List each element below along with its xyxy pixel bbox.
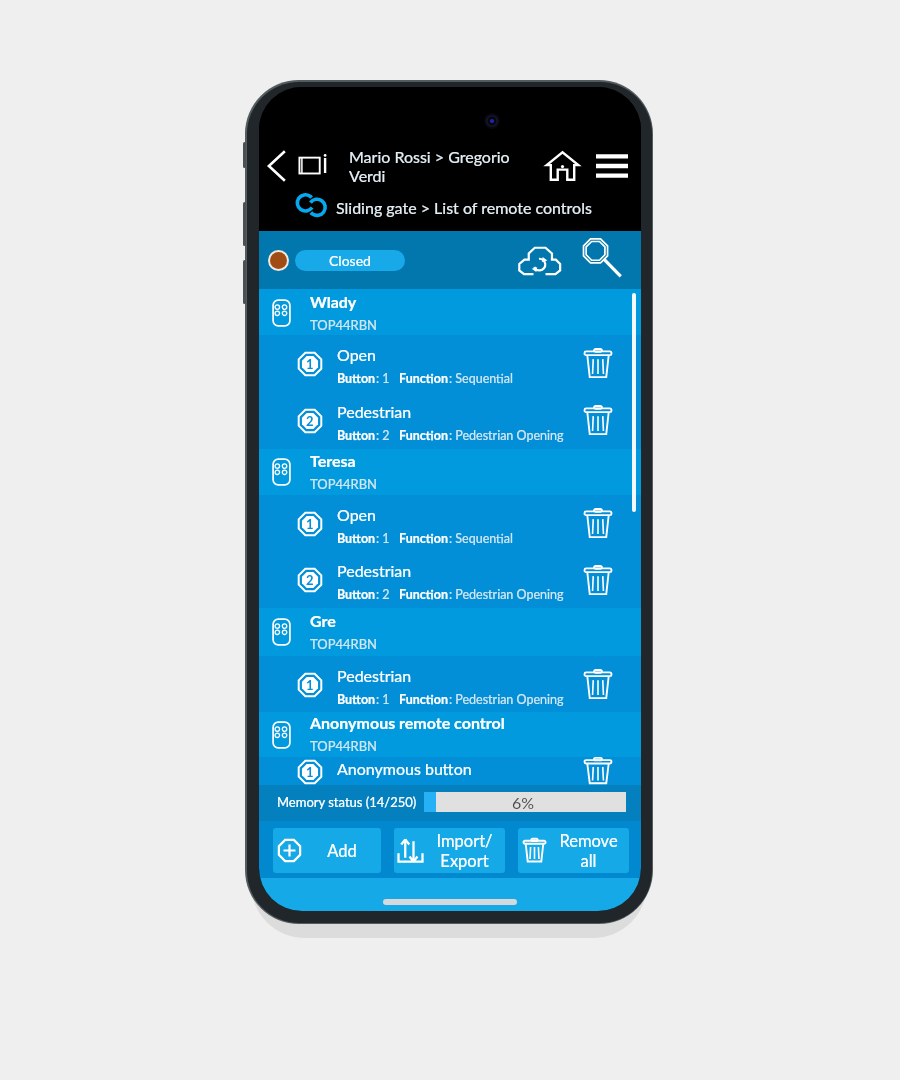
button[interactable]: Delete — [575, 340, 621, 386]
staticText: Function — [399, 428, 449, 443]
staticText: Add — [327, 841, 357, 861]
button[interactable]: 1 — [259, 757, 641, 785]
staticText: Gre — [310, 611, 336, 630]
staticText: : Pedestrian Opening — [449, 428, 564, 443]
staticText: Button — [337, 428, 376, 443]
staticText: TOP44RBN — [310, 476, 378, 492]
button[interactable]: Delete — [575, 557, 621, 603]
staticText: Pedestrian — [337, 402, 412, 421]
button[interactable]: Search — [578, 234, 624, 282]
staticText: TOP44RBN — [310, 636, 378, 652]
staticText: TOP44RBN — [310, 738, 378, 754]
staticText: Function — [399, 587, 449, 602]
staticText: Anonymous remote control — [310, 713, 505, 732]
button[interactable]: Remove all — [518, 828, 629, 873]
staticText: Open — [337, 505, 376, 524]
button[interactable]: Gre — [259, 608, 641, 656]
button[interactable]: Delete — [575, 661, 621, 707]
staticText: 6% — [512, 793, 535, 812]
staticText: Closed — [329, 252, 371, 269]
button[interactable]: Anonymous remote control — [259, 712, 641, 757]
staticText: Button — [337, 692, 376, 707]
staticText: Function — [399, 371, 449, 386]
staticText: Sliding gate > List of remote controls — [336, 198, 592, 217]
button[interactable]: Delete — [575, 500, 621, 546]
button[interactable]: Delete — [575, 397, 621, 443]
button[interactable]: Closed — [295, 250, 405, 271]
staticText: 1 — [306, 516, 314, 532]
staticText: : 2 — [376, 428, 390, 443]
button[interactable]: Menu — [592, 146, 632, 186]
button[interactable]: Import/ Export — [394, 828, 505, 873]
staticText: 1 — [306, 764, 314, 780]
button[interactable]: 2 — [259, 551, 641, 608]
staticText: : 2 — [376, 587, 390, 602]
staticText: 1 — [306, 677, 314, 693]
staticText: 2 — [306, 413, 314, 429]
staticText: : Sequential — [449, 371, 513, 386]
staticText: Button — [337, 371, 376, 386]
button[interactable]: Sync with cloud — [516, 238, 562, 282]
button[interactable]: Back — [263, 146, 289, 186]
button[interactable]: 1 — [259, 656, 641, 712]
staticText: Pedestrian — [337, 666, 412, 685]
button[interactable]: 2 — [259, 391, 641, 449]
staticText: Memory status (14/250) — [277, 794, 417, 810]
staticText: Anonymous button — [337, 759, 472, 778]
button[interactable]: Gate status indicator — [268, 250, 289, 271]
staticText: TOP44RBN — [310, 317, 378, 333]
button[interactable]: Delete — [575, 757, 621, 785]
staticText: 2 — [306, 572, 314, 588]
staticText: : 1 — [376, 692, 390, 707]
staticText: 1 — [306, 356, 314, 372]
staticText: Function — [399, 692, 449, 707]
button[interactable]: 1 — [259, 335, 641, 391]
staticText: : 1 — [376, 371, 390, 386]
staticText: Import/ Export — [436, 831, 493, 871]
staticText: Pedestrian — [337, 561, 412, 580]
button[interactable]: Device info — [297, 147, 329, 185]
button[interactable]: Teresa — [259, 449, 641, 495]
staticText: : Pedestrian Opening — [449, 692, 564, 707]
button[interactable]: Add — [273, 828, 381, 873]
staticText: Remove all — [559, 831, 618, 871]
staticText: Open — [337, 345, 376, 364]
staticText: Mario Rossi > Gregorio Verdi — [349, 147, 514, 186]
staticText: : Pedestrian Opening — [449, 587, 564, 602]
staticText: Function — [399, 531, 449, 546]
staticText: Button — [337, 587, 376, 602]
staticText: Teresa — [310, 451, 356, 470]
button[interactable]: 1 — [259, 495, 641, 551]
button[interactable]: Home — [542, 146, 582, 186]
staticText: Wlady — [310, 292, 357, 311]
staticText: : Sequential — [449, 531, 513, 546]
button[interactable]: Wlady — [259, 291, 641, 335]
staticText: : 1 — [376, 531, 390, 546]
staticText: Button — [337, 531, 376, 546]
